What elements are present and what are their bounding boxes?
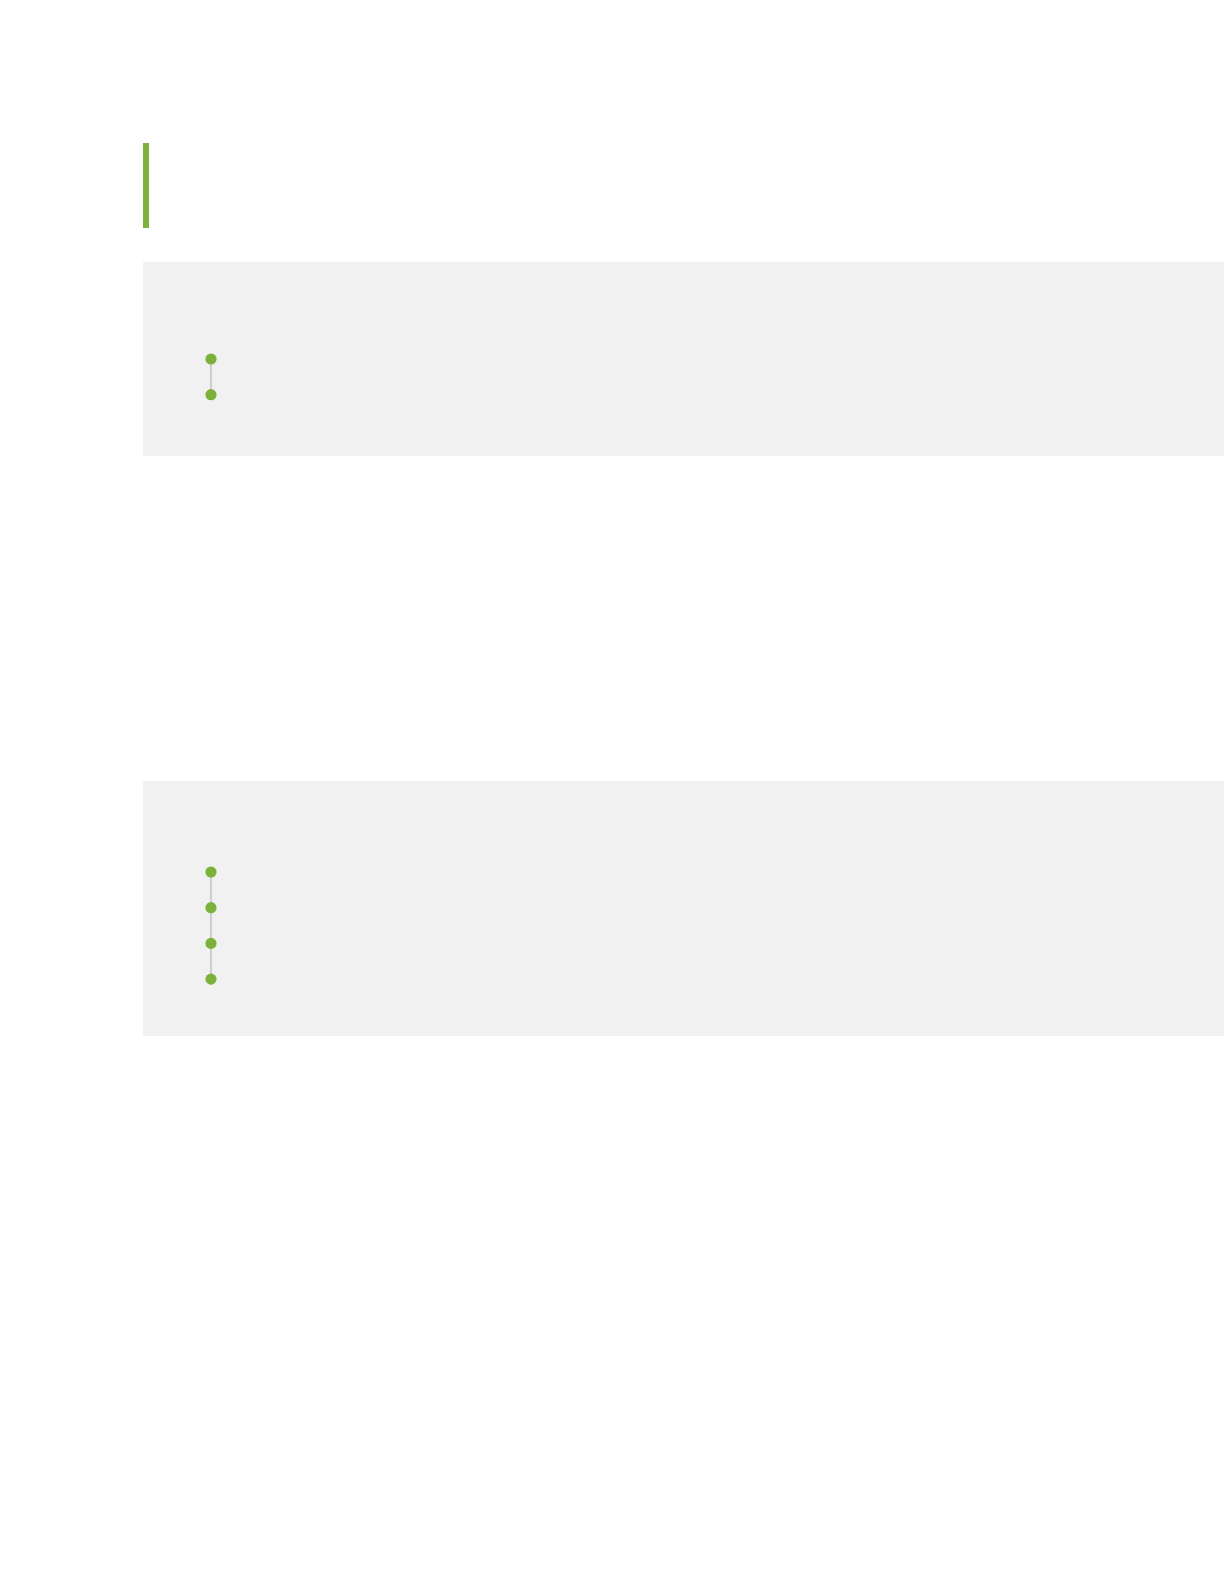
other: Timeline with 4 steps [143,781,1224,1036]
button[interactable]: Timeline with 4 steps [143,781,1224,1036]
other: Timeline with 2 steps [143,262,1224,456]
button[interactable]: Timeline with 2 steps [143,262,1224,456]
